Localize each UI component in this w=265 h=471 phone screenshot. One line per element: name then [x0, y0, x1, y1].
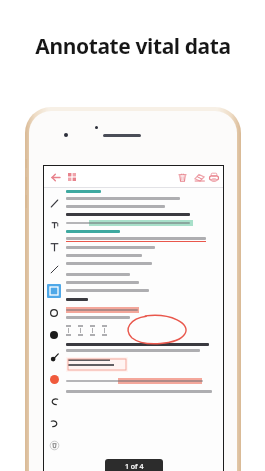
button[interactable]: Text small [44, 214, 64, 236]
button[interactable]: Text large [44, 236, 64, 258]
button[interactable]: Back [48, 170, 62, 184]
button[interactable]: Rectangle [44, 280, 64, 302]
button[interactable]: Redo [44, 412, 64, 434]
button[interactable]: Marker [44, 346, 64, 368]
button[interactable]: Circle filled [44, 324, 64, 346]
button[interactable]: Line [44, 258, 64, 280]
button[interactable]: Grid view [65, 170, 79, 184]
staticText: Annotate vital data [35, 32, 231, 61]
button[interactable]: Color red [44, 368, 64, 390]
button[interactable]: Circle outline [44, 302, 64, 324]
staticText: 1 of 4 [125, 462, 144, 471]
button[interactable]: 1 of 4 [105, 459, 163, 471]
button[interactable]: Print [207, 170, 221, 184]
button[interactable]: Delete [175, 170, 189, 184]
button[interactable]: Undo [44, 390, 64, 412]
button[interactable]: Erase [192, 170, 206, 184]
button[interactable]: Delete page [44, 434, 64, 456]
button[interactable]: Pen [44, 192, 64, 214]
